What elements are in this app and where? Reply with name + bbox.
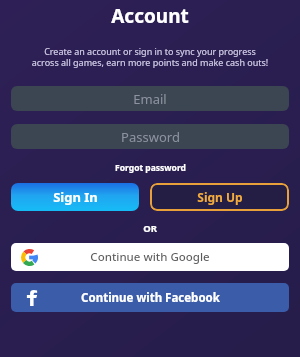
staticText: Continue with Facebook xyxy=(81,290,220,306)
button[interactable]: Sign Up xyxy=(150,183,289,211)
staticText: Email xyxy=(133,90,167,108)
staticText: Forgot password xyxy=(115,162,186,174)
button[interactable]: Sign In xyxy=(11,183,139,211)
button[interactable]: Password xyxy=(11,124,289,149)
button[interactable]: Continue with Google xyxy=(11,243,289,271)
staticText: Account xyxy=(111,3,189,29)
button[interactable]: Email xyxy=(11,86,289,111)
staticText: Sign Up xyxy=(197,189,243,205)
staticText: OR xyxy=(143,222,157,235)
button[interactable]: Forgot password xyxy=(110,160,191,176)
button[interactable]: Continue with Facebook xyxy=(11,283,289,312)
staticText: Password xyxy=(121,128,180,146)
staticText: Continue with Google xyxy=(90,249,210,265)
staticText: Sign In xyxy=(53,188,98,206)
staticText: Create an account or sign in to sync you… xyxy=(12,45,288,69)
